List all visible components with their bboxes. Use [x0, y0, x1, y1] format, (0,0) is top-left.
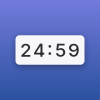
staticText: 24:59 [20, 39, 80, 61]
